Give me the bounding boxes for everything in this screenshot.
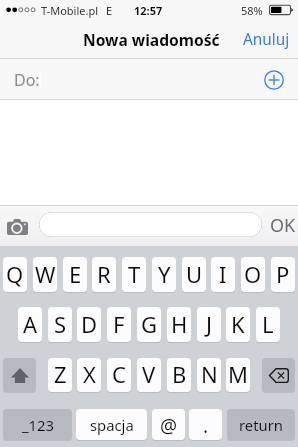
staticText: R — [97, 259, 111, 289]
button[interactable]: G — [137, 307, 161, 342]
button[interactable]: E — [63, 257, 87, 292]
button[interactable]: _123 — [3, 409, 72, 440]
staticText: J — [206, 309, 213, 339]
button[interactable]: Q — [3, 257, 27, 292]
button[interactable]: H — [167, 307, 191, 342]
staticText: P — [276, 259, 290, 289]
button[interactable]: Camera — [7, 219, 28, 235]
staticText: K — [231, 309, 245, 339]
staticText: E — [106, 3, 113, 18]
button[interactable]: M — [226, 358, 250, 392]
button[interactable]: Z — [48, 358, 72, 392]
button[interactable]: Backspace — [262, 358, 295, 392]
staticText: 58% — [241, 3, 263, 18]
staticText: return — [239, 415, 283, 435]
staticText: T-Mobile.pl — [41, 3, 99, 18]
button[interactable]: I — [211, 257, 235, 292]
staticText: G — [141, 309, 158, 339]
staticText: Do: — [14, 69, 40, 91]
staticText: Z — [54, 359, 67, 389]
button[interactable]: U — [182, 257, 206, 292]
staticText: Anuluj — [243, 29, 290, 50]
staticText: T — [128, 259, 141, 289]
button[interactable]: J — [197, 307, 221, 342]
button[interactable]: T — [122, 257, 146, 292]
staticText: C — [112, 359, 126, 389]
button[interactable] — [39, 212, 262, 237]
button[interactable]: A — [18, 307, 42, 342]
staticText: S — [54, 309, 67, 339]
staticText: M — [228, 359, 248, 389]
staticText: O — [244, 259, 262, 289]
staticText: H — [171, 309, 188, 339]
staticText: Q — [6, 259, 24, 289]
staticText: spacja — [90, 415, 134, 435]
button[interactable]: C — [107, 358, 131, 392]
staticText: L — [262, 309, 274, 339]
button[interactable]: . — [189, 409, 222, 440]
staticText: A — [23, 309, 38, 339]
button[interactable]: X — [77, 358, 101, 392]
button[interactable]: B — [167, 358, 191, 392]
staticText: N — [201, 359, 218, 389]
button[interactable]: Y — [152, 257, 176, 292]
button[interactable]: Shift — [3, 358, 36, 392]
button[interactable]: W — [33, 257, 57, 292]
staticText: 12:57 — [134, 3, 163, 18]
button[interactable]: @ — [152, 409, 185, 440]
button[interactable]: return — [227, 409, 295, 440]
staticText: U — [186, 259, 203, 289]
staticText: V — [142, 359, 156, 389]
button[interactable]: V — [137, 358, 161, 392]
button[interactable]: OK — [266, 209, 298, 242]
button[interactable]: F — [107, 307, 131, 342]
staticText: F — [113, 309, 125, 339]
staticText: Nowa wiadomość — [83, 29, 220, 50]
button[interactable]: Add recipient — [264, 70, 284, 90]
button[interactable]: Anuluj — [235, 22, 298, 57]
staticText: B — [172, 359, 187, 389]
staticText: E — [69, 259, 82, 289]
staticText: OK — [270, 213, 296, 238]
button[interactable]: K — [226, 307, 250, 342]
staticText: W — [35, 259, 56, 289]
staticText: Y — [158, 259, 171, 289]
button[interactable]: D — [77, 307, 101, 342]
button[interactable]: S — [48, 307, 72, 342]
staticText: X — [83, 359, 96, 389]
button[interactable]: R — [92, 257, 116, 292]
staticText: _123 — [22, 415, 54, 435]
button[interactable]: spacja — [76, 409, 147, 440]
button[interactable]: L — [256, 307, 280, 342]
button[interactable]: N — [197, 358, 221, 392]
staticText: . — [203, 413, 209, 439]
staticText: D — [81, 309, 98, 339]
button[interactable]: P — [271, 257, 295, 292]
button[interactable]: O — [241, 257, 265, 292]
staticText: @ — [160, 413, 178, 439]
staticText: I — [219, 259, 227, 289]
